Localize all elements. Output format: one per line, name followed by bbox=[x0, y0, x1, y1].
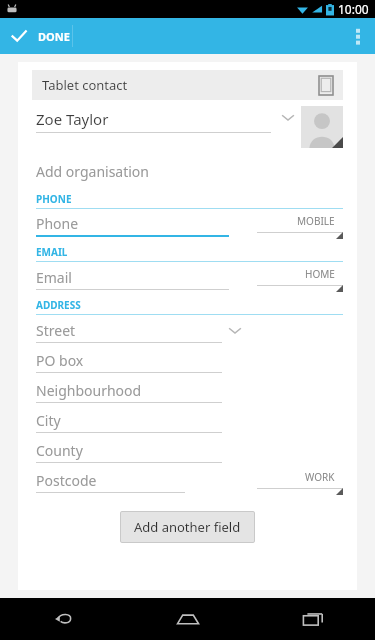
staticText: Add organisation bbox=[36, 162, 149, 181]
button[interactable]: WORK bbox=[257, 466, 343, 495]
button[interactable]: Back bbox=[0, 598, 125, 640]
button[interactable]: Address type bbox=[228, 326, 242, 335]
staticText: County bbox=[36, 441, 83, 460]
button[interactable]: Home bbox=[125, 598, 250, 640]
staticText: DONE bbox=[38, 29, 70, 44]
button[interactable]: Phone bbox=[36, 211, 229, 237]
button[interactable]: Tablet contact bbox=[32, 70, 343, 100]
staticText: HOME bbox=[305, 267, 335, 281]
staticText: WORK bbox=[305, 470, 335, 484]
staticText: 10:00 bbox=[338, 1, 369, 17]
button[interactable]: PO box bbox=[36, 348, 222, 373]
button[interactable]: More options bbox=[341, 18, 375, 54]
button[interactable]: Recent apps bbox=[250, 598, 375, 640]
staticText: Add another field bbox=[134, 518, 241, 536]
staticText: City bbox=[36, 411, 61, 430]
staticText: Email bbox=[36, 268, 72, 287]
staticText: PHONE bbox=[36, 192, 72, 206]
staticText: MOBILE bbox=[297, 214, 335, 228]
button[interactable]: Add another field bbox=[120, 511, 255, 543]
staticText: Postcode bbox=[36, 471, 97, 490]
staticText: EMAIL bbox=[36, 245, 68, 259]
staticText: Tablet contact bbox=[42, 76, 128, 94]
button[interactable]: City bbox=[36, 408, 222, 433]
staticText: PO box bbox=[36, 351, 84, 370]
staticText: ADDRESS bbox=[36, 298, 81, 312]
staticText: Phone bbox=[36, 214, 79, 233]
button[interactable]: County bbox=[36, 438, 222, 463]
button[interactable]: DONE bbox=[0, 18, 84, 54]
button[interactable]: Zoe Taylor bbox=[36, 106, 301, 133]
staticText: Street bbox=[36, 321, 76, 340]
button[interactable]: Contact photo bbox=[301, 106, 343, 148]
button[interactable]: MOBILE bbox=[257, 210, 343, 239]
button[interactable]: Add organisation bbox=[18, 160, 357, 182]
button[interactable]: HOME bbox=[257, 263, 343, 292]
button[interactable]: Neighbourhood bbox=[36, 378, 222, 403]
button[interactable]: Street bbox=[36, 318, 222, 343]
button[interactable]: Email bbox=[36, 265, 229, 290]
button[interactable]: Postcode bbox=[36, 468, 185, 493]
staticText: Neighbourhood bbox=[36, 381, 142, 400]
staticText: Zoe Taylor bbox=[36, 109, 109, 129]
